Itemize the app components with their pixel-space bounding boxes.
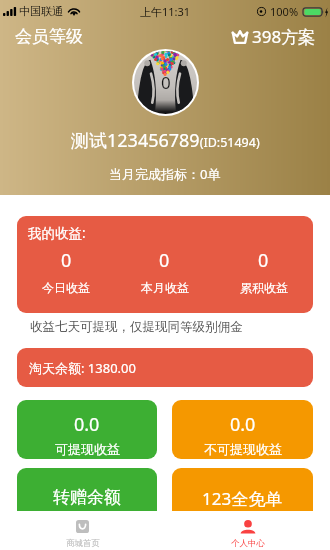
- button[interactable]: 0: [17, 248, 115, 295]
- staticText: 淘天余额: 1380.00: [29, 359, 136, 377]
- button[interactable]: 我的收益:: [17, 216, 313, 313]
- button[interactable]: 商城首页: [0, 511, 165, 550]
- staticText: 我的收益:: [28, 224, 86, 242]
- staticText: 398方案: [252, 25, 316, 48]
- button[interactable]: 123全免单: [172, 468, 313, 520]
- button[interactable]: 个人中心: [165, 511, 330, 550]
- staticText: 0: [258, 248, 269, 273]
- staticText: 收益七天可提现，仅提现同等级别佣金: [30, 319, 243, 335]
- other: 个人中心: [240, 520, 256, 534]
- button[interactable]: 转赠余额: [17, 468, 157, 520]
- staticText: 商城首页: [66, 538, 100, 549]
- button[interactable]: 淘天余额: 1380.00: [17, 348, 313, 387]
- staticText: 100%: [270, 4, 299, 19]
- staticText: 会员等级: [15, 26, 83, 47]
- staticText: 转赠余额: [53, 487, 121, 508]
- staticText: 今日收益: [42, 280, 90, 295]
- staticText: 123全免单: [202, 487, 283, 510]
- button[interactable]: 方案: [232, 25, 316, 48]
- button[interactable]: 0.0: [172, 400, 313, 459]
- staticText: 当月完成指标：0单: [109, 165, 221, 183]
- button[interactable]: 0: [115, 248, 214, 295]
- staticText: 本月收益: [141, 280, 189, 295]
- staticText: 个人中心: [231, 538, 265, 549]
- staticText: 测试123456789(ID:51494): [71, 128, 260, 153]
- staticText: 可提现收益: [55, 441, 120, 457]
- staticText: 0: [61, 248, 72, 273]
- button[interactable]: 0.0: [17, 400, 157, 459]
- staticText: 上午11:31: [140, 4, 191, 19]
- button[interactable]: 0: [134, 51, 197, 114]
- staticText: 0.0: [74, 412, 100, 437]
- staticText: 0.0: [230, 412, 256, 437]
- other: 商城首页: [76, 520, 89, 533]
- staticText: 不可提现收益: [204, 441, 282, 457]
- other: 方案: [232, 30, 248, 44]
- staticText: 累积收益: [240, 280, 288, 295]
- staticText: 中国联通: [19, 4, 63, 18]
- staticText: 0: [161, 71, 171, 94]
- button[interactable]: 0: [214, 248, 313, 295]
- staticText: 0: [159, 248, 170, 273]
